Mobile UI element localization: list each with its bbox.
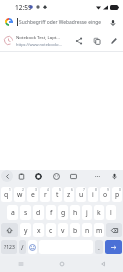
staticText: i bbox=[92, 190, 94, 199]
staticText: e bbox=[31, 190, 35, 199]
button[interactable]: Voice input bbox=[108, 170, 120, 182]
staticText: / bbox=[21, 243, 24, 252]
staticText: 7 bbox=[83, 188, 85, 192]
staticText: r bbox=[44, 190, 47, 199]
staticText: u bbox=[79, 190, 84, 199]
button[interactable]: / bbox=[19, 240, 26, 254]
staticText: x bbox=[37, 226, 41, 235]
button[interactable]: Stickers bbox=[50, 170, 62, 182]
staticText: p bbox=[115, 190, 120, 199]
staticText: 12:59 bbox=[15, 3, 32, 12]
button[interactable]: . bbox=[95, 240, 103, 254]
button[interactable]: n bbox=[82, 223, 92, 237]
staticText: m bbox=[96, 226, 103, 235]
staticText: 5 bbox=[59, 188, 61, 192]
button[interactable]: g bbox=[58, 205, 68, 220]
staticText: w bbox=[17, 190, 23, 199]
button[interactable]: Go bbox=[105, 240, 122, 254]
staticText: Notebook Test, Lapt... bbox=[16, 34, 60, 40]
button[interactable]: e bbox=[27, 187, 38, 202]
button[interactable]: r bbox=[40, 187, 50, 202]
staticText: . bbox=[98, 243, 100, 252]
staticText: j bbox=[86, 208, 88, 217]
button[interactable]: Settings bbox=[32, 170, 44, 182]
staticText: z bbox=[67, 190, 71, 199]
staticText: 9 bbox=[107, 188, 109, 192]
staticText: f bbox=[50, 208, 53, 217]
staticText: https://www.notebookc... bbox=[16, 42, 62, 47]
staticText: a bbox=[11, 208, 15, 217]
button[interactable]: Expand toolbar bbox=[1, 170, 13, 182]
button[interactable]: GIF bbox=[67, 170, 79, 182]
button[interactable]: Shift bbox=[1, 223, 18, 237]
button[interactable]: f bbox=[46, 205, 56, 220]
button[interactable]: Edit bbox=[106, 33, 121, 48]
staticText: 1 bbox=[9, 188, 11, 192]
staticText: q bbox=[4, 190, 9, 199]
button[interactable]: x bbox=[33, 223, 44, 237]
button[interactable]: y bbox=[20, 223, 31, 237]
button[interactable]: Suchbegriff oder Webadresse einge bbox=[0, 14, 123, 30]
button[interactable]: q bbox=[1, 187, 12, 202]
staticText: t bbox=[56, 190, 59, 199]
staticText: c bbox=[49, 226, 53, 235]
button[interactable]: Voice search bbox=[106, 16, 119, 29]
button[interactable]: k bbox=[94, 205, 104, 220]
button[interactable]: b bbox=[70, 223, 80, 237]
button[interactable]: l bbox=[106, 205, 116, 220]
button[interactable]: Home bbox=[41, 256, 82, 272]
button[interactable]: More options bbox=[91, 170, 103, 182]
staticText: k bbox=[97, 208, 101, 217]
button[interactable]: j bbox=[82, 205, 92, 220]
button[interactable]: Back bbox=[82, 256, 123, 272]
button[interactable]: w bbox=[14, 187, 25, 202]
button[interactable]: ?123 bbox=[1, 240, 17, 254]
button[interactable]: o bbox=[100, 187, 110, 202]
staticText: h bbox=[73, 208, 78, 217]
button[interactable]: Share bbox=[71, 33, 86, 48]
button[interactable]: p bbox=[112, 187, 122, 202]
staticText: ?123 bbox=[4, 244, 15, 251]
staticText: 4 bbox=[47, 188, 49, 192]
button[interactable]: Copy bbox=[89, 33, 104, 48]
staticText: n bbox=[85, 226, 90, 235]
button[interactable]: h bbox=[70, 205, 80, 220]
button[interactable]: Recents bbox=[0, 256, 41, 272]
staticText: s bbox=[24, 208, 28, 217]
staticText: o bbox=[103, 190, 108, 199]
staticText: 6 bbox=[71, 188, 73, 192]
button[interactable]: v bbox=[58, 223, 68, 237]
button[interactable]: Clipboard bbox=[15, 170, 27, 182]
staticText: 3 bbox=[35, 188, 37, 192]
button[interactable]: a bbox=[7, 205, 18, 220]
button[interactable]: s bbox=[20, 205, 31, 220]
staticText: g bbox=[61, 208, 66, 217]
staticText: 0 bbox=[119, 188, 121, 192]
staticText: Suchbegriff oder Webadresse einge bbox=[19, 19, 105, 26]
button[interactable]: z bbox=[64, 187, 74, 202]
button[interactable]: t bbox=[52, 187, 62, 202]
staticText: v bbox=[61, 226, 65, 235]
button[interactable]: Notebook Test, Lapt... bbox=[0, 30, 123, 51]
button[interactable]: d bbox=[33, 205, 44, 220]
staticText: d bbox=[36, 208, 41, 217]
staticText: 8 bbox=[95, 188, 97, 192]
button[interactable]: Backspace bbox=[106, 223, 122, 237]
button[interactable]: u bbox=[76, 187, 86, 202]
button[interactable]: c bbox=[46, 223, 56, 237]
staticText: 2 bbox=[22, 188, 24, 192]
button[interactable]: m bbox=[94, 223, 104, 237]
staticText: y bbox=[24, 226, 28, 235]
button[interactable]: Emoji bbox=[28, 240, 37, 254]
button[interactable]: i bbox=[88, 187, 98, 202]
staticText: l bbox=[110, 208, 112, 217]
staticText: b bbox=[73, 226, 78, 235]
